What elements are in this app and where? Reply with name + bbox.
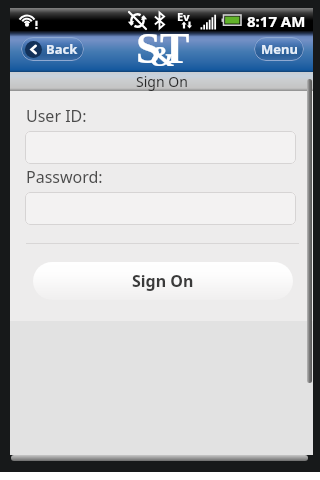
staticText: Sign On [136,72,188,91]
staticText: Sign On [132,270,194,292]
button[interactable] [25,192,296,225]
staticText: 8:17 AM [247,11,306,31]
staticText: Password: [26,166,103,188]
staticText: S [136,24,161,65]
staticText: Ev [177,9,190,24]
button[interactable]: Sign On [33,262,293,300]
button[interactable]: Menu [254,37,304,61]
staticText: T [160,24,190,65]
staticText: Menu [261,40,298,58]
button[interactable]: Back [21,37,84,61]
staticText: Back [46,40,78,58]
staticText: & [150,39,175,72]
staticText: User ID: [26,105,87,127]
button[interactable] [25,131,296,164]
